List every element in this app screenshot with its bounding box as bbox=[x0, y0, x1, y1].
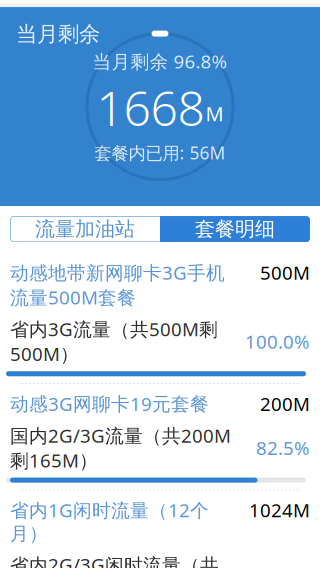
staticText: 1024M bbox=[249, 498, 310, 522]
staticText: 动感3G网聊卡19元套餐 bbox=[10, 391, 209, 416]
button[interactable]: 套餐明细 bbox=[160, 216, 310, 242]
staticText: 500M bbox=[260, 260, 310, 285]
staticText: 省内1G闲时流量（12个月） bbox=[10, 498, 209, 545]
staticText: 流量加油站 bbox=[35, 217, 135, 241]
staticText: 省内2G/3G闲时流量（共1024M剩10... bbox=[10, 552, 219, 568]
staticText: 100.0% bbox=[245, 329, 310, 354]
staticText: 82.5% bbox=[256, 435, 310, 460]
staticText: M bbox=[205, 100, 223, 127]
button[interactable]: 流量加油站 bbox=[10, 216, 160, 242]
staticText: 当月剩余 96.8% bbox=[92, 49, 227, 74]
staticText: ‹ bbox=[10, 0, 22, 6]
staticText: 1668 bbox=[96, 76, 204, 139]
staticText: 套餐明细 bbox=[195, 217, 275, 241]
staticText: 国内2G/3G流量（共200M剩165M） bbox=[10, 423, 231, 473]
staticText: 动感地带新网聊卡3G手机流量500M套餐 bbox=[10, 260, 225, 310]
staticText: 省内3G流量（共500M剩500M） bbox=[10, 317, 218, 366]
staticText: 套餐内已用: 56M bbox=[94, 141, 225, 164]
staticText: 当月剩余 bbox=[16, 21, 100, 47]
staticText: 200M bbox=[260, 391, 310, 416]
